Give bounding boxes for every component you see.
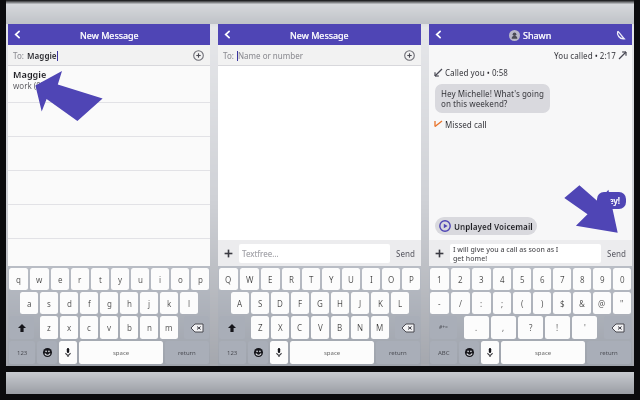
button[interactable]: Hey! <box>603 195 620 206</box>
button[interactable]: m <box>160 316 178 339</box>
button[interactable]: G <box>311 292 329 314</box>
button[interactable]: Y <box>322 268 340 290</box>
button[interactable]: g <box>100 292 118 314</box>
button[interactable]: ' <box>572 316 597 339</box>
button[interactable]: ? <box>518 316 543 339</box>
button[interactable]: Voice input <box>270 341 288 364</box>
button[interactable]: . <box>464 316 489 339</box>
button[interactable]: Hey Michelle! What's going on this weeke… <box>441 88 544 109</box>
button[interactable]: P <box>402 268 420 290</box>
button[interactable]: - <box>430 292 449 314</box>
button[interactable]: b <box>120 316 138 339</box>
button[interactable]: : <box>472 292 491 314</box>
button[interactable]: Attach <box>222 247 235 260</box>
button[interactable]: 123 <box>9 341 35 364</box>
button[interactable]: M <box>371 316 389 339</box>
button[interactable]: / <box>451 292 470 314</box>
button[interactable]: return <box>376 341 420 364</box>
button[interactable]: ABC <box>430 341 457 364</box>
button[interactable]: Add contact <box>193 50 204 61</box>
button[interactable]: H <box>331 292 349 314</box>
button[interactable]: Voice input <box>481 341 499 364</box>
button[interactable]: a <box>20 292 38 314</box>
button[interactable]: & <box>573 292 591 314</box>
button[interactable]: N <box>351 316 369 339</box>
button[interactable]: 8 <box>573 268 591 290</box>
button[interactable]: ; <box>493 292 511 314</box>
button[interactable]: A <box>231 292 249 314</box>
button[interactable]: w <box>30 268 49 290</box>
button[interactable]: F <box>291 292 309 314</box>
button[interactable]: ) <box>533 292 551 314</box>
button[interactable]: Send <box>394 248 417 259</box>
button[interactable]: 5 <box>513 268 531 290</box>
button[interactable]: Emoji <box>459 341 479 364</box>
button[interactable]: D <box>271 292 289 314</box>
button[interactable]: Emoji <box>248 341 268 364</box>
button[interactable]: $ <box>553 292 571 314</box>
button[interactable]: Q <box>219 268 238 290</box>
button[interactable]: ( <box>513 292 531 314</box>
button[interactable]: O <box>382 268 400 290</box>
button[interactable]: j <box>140 292 158 314</box>
button[interactable]: n <box>140 316 158 339</box>
button[interactable]: T <box>302 268 320 290</box>
button[interactable]: W <box>240 268 259 290</box>
button[interactable]: Add contact <box>404 50 415 61</box>
button[interactable]: C <box>291 316 309 339</box>
button[interactable]: Z <box>251 316 269 339</box>
button[interactable]: Attach <box>433 247 446 260</box>
button[interactable]: Send <box>605 248 628 259</box>
button[interactable]: U <box>342 268 360 290</box>
button[interactable]: Emoji <box>37 341 57 364</box>
button[interactable]: #+= <box>430 316 457 339</box>
button[interactable]: Backspace <box>604 316 631 339</box>
button[interactable]: L <box>391 292 409 314</box>
button[interactable]: 9 <box>593 268 611 290</box>
button[interactable]: Backspace <box>184 316 209 339</box>
button[interactable]: r <box>71 268 89 290</box>
button[interactable]: return <box>165 341 209 364</box>
button[interactable]: Shift <box>9 316 34 339</box>
button[interactable]: Play voicemail <box>439 220 533 232</box>
button[interactable]: , <box>491 316 516 339</box>
button[interactable]: " <box>613 292 631 314</box>
button[interactable]: 0 <box>613 268 631 290</box>
button[interactable]: Back <box>13 30 22 39</box>
button[interactable]: l <box>180 292 198 314</box>
button[interactable]: Backspace <box>395 316 420 339</box>
button[interactable]: 4 <box>493 268 511 290</box>
button[interactable]: 1 <box>430 268 449 290</box>
button[interactable]: x <box>60 316 78 339</box>
button[interactable]: i <box>151 268 169 290</box>
button[interactable]: c <box>80 316 98 339</box>
button[interactable]: E <box>261 268 280 290</box>
button[interactable]: 123 <box>219 341 246 364</box>
button[interactable]: Back <box>223 30 232 39</box>
button[interactable]: d <box>60 292 78 314</box>
button[interactable]: space <box>290 341 374 364</box>
button[interactable]: Voice input <box>59 341 77 364</box>
button[interactable]: Back <box>429 24 632 45</box>
button[interactable]: I <box>362 268 380 290</box>
button[interactable]: K <box>371 292 389 314</box>
button[interactable]: q <box>9 268 28 290</box>
button[interactable]: @ <box>593 292 611 314</box>
button[interactable]: 3 <box>472 268 491 290</box>
button[interactable]: I will give you a call as soon as I get … <box>453 244 598 263</box>
button[interactable]: z <box>40 316 58 339</box>
button[interactable]: y <box>111 268 129 290</box>
button[interactable]: R <box>282 268 300 290</box>
button[interactable]: B <box>331 316 349 339</box>
button[interactable]: Shift <box>219 316 245 339</box>
button[interactable]: space <box>79 341 163 364</box>
button[interactable]: 2 <box>451 268 470 290</box>
button[interactable]: 7 <box>553 268 571 290</box>
button[interactable]: return <box>587 341 631 364</box>
button[interactable]: e <box>51 268 69 290</box>
button[interactable]: To: <box>218 45 421 66</box>
button[interactable]: X <box>271 316 289 339</box>
button[interactable]: To: <box>8 45 210 66</box>
button[interactable]: v <box>100 316 118 339</box>
button[interactable]: V <box>311 316 329 339</box>
